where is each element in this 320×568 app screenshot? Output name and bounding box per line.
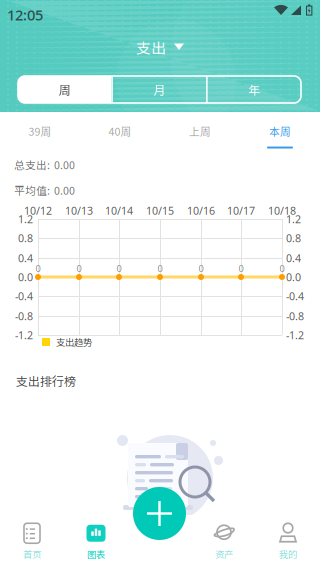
staticText: 0	[157, 262, 162, 275]
button[interactable]: Add transaction	[133, 487, 186, 540]
staticText: 10/18	[268, 203, 296, 218]
button[interactable]: 本周	[240, 112, 320, 150]
staticText: -1.2	[286, 328, 304, 342]
staticText: 0.8	[286, 231, 301, 245]
staticText: -0.8	[15, 309, 33, 323]
staticText: 10/15	[146, 203, 174, 218]
button[interactable]: 资产	[192, 515, 256, 567]
staticText: 10/12	[24, 203, 52, 218]
staticText: 资产	[215, 547, 233, 561]
staticText: 10/17	[227, 203, 255, 218]
button[interactable]: 图表	[64, 515, 128, 567]
button[interactable]: 首页	[0, 515, 64, 567]
staticText: 本周	[269, 123, 291, 139]
button[interactable]: 年	[208, 76, 301, 103]
staticText: 0	[238, 262, 243, 275]
staticText: 支出排行榜	[16, 372, 76, 389]
staticText: 10/13	[65, 203, 93, 218]
staticText: 平均值: 0.00	[14, 182, 75, 198]
staticText: 1.2	[286, 212, 301, 226]
staticText: 月	[153, 81, 165, 98]
staticText: 年	[248, 81, 260, 98]
staticText: 0	[35, 262, 40, 275]
staticText: -0.4	[15, 289, 33, 303]
staticText: -0.8	[286, 309, 304, 323]
staticText: 10/14	[105, 203, 133, 218]
button[interactable]: 39周	[0, 112, 80, 150]
staticText: 39周	[28, 123, 51, 139]
button[interactable]: 上周	[160, 112, 240, 150]
staticText: -1.2	[15, 328, 33, 342]
staticText: 总支出: 0.00	[14, 157, 75, 172]
staticText: 0	[116, 262, 121, 275]
staticText: 10/16	[187, 203, 215, 218]
staticText: 上周	[189, 123, 211, 139]
button[interactable]: 周	[18, 76, 111, 103]
staticText: 支出	[136, 36, 166, 58]
staticText: 0	[279, 262, 284, 275]
button[interactable]: 40周	[80, 112, 160, 150]
staticText: 0.0	[286, 270, 301, 284]
staticText: 图表	[87, 547, 105, 561]
staticText: 0	[198, 262, 203, 275]
button[interactable]: 月	[113, 76, 206, 103]
button[interactable]: 支出	[136, 35, 184, 59]
staticText: 首页	[23, 547, 41, 561]
staticText: 0	[76, 262, 81, 275]
staticText: 我的	[279, 547, 297, 561]
staticText: -0.4	[286, 289, 304, 303]
button[interactable]: 我的	[256, 515, 320, 567]
staticText: 支出趋势	[56, 335, 92, 349]
staticText: 0.0	[18, 270, 33, 284]
staticText: 40周	[108, 123, 131, 139]
staticText: 周	[59, 81, 71, 98]
staticText: 0.4	[18, 251, 33, 265]
staticText: 12:05	[7, 5, 43, 24]
staticText: 1.2	[18, 212, 33, 226]
staticText: 0.8	[18, 231, 33, 245]
staticText: 0.4	[286, 251, 301, 265]
